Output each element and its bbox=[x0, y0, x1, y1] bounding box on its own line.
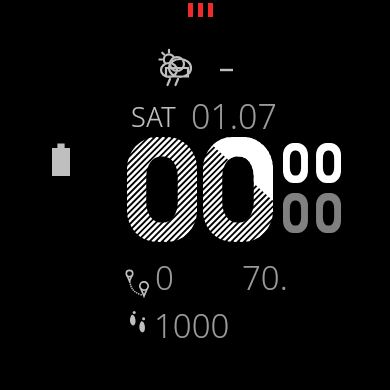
button[interactable]: Battery bbox=[46, 140, 78, 182]
staticText: 1000 bbox=[154, 303, 230, 348]
button[interactable]: SAT bbox=[131, 98, 177, 135]
button[interactable]: 1000 bbox=[154, 303, 230, 348]
button[interactable]: 01.07 bbox=[191, 93, 277, 139]
button[interactable]: 0 bbox=[155, 255, 174, 300]
staticText: 0 bbox=[155, 255, 174, 300]
button[interactable]: Notifications bbox=[185, 0, 217, 22]
button[interactable]: SAT bbox=[0, 0, 390, 390]
button[interactable]: Steps bbox=[124, 306, 156, 346]
button[interactable]: Time bbox=[120, 132, 345, 238]
staticText: 01.07 bbox=[191, 93, 277, 139]
staticText: SAT bbox=[131, 98, 177, 135]
button[interactable]: Weather bbox=[155, 48, 235, 88]
button[interactable]: Distance bbox=[120, 262, 160, 304]
button[interactable]: 70. bbox=[242, 255, 288, 300]
staticText: 70. bbox=[242, 255, 288, 300]
